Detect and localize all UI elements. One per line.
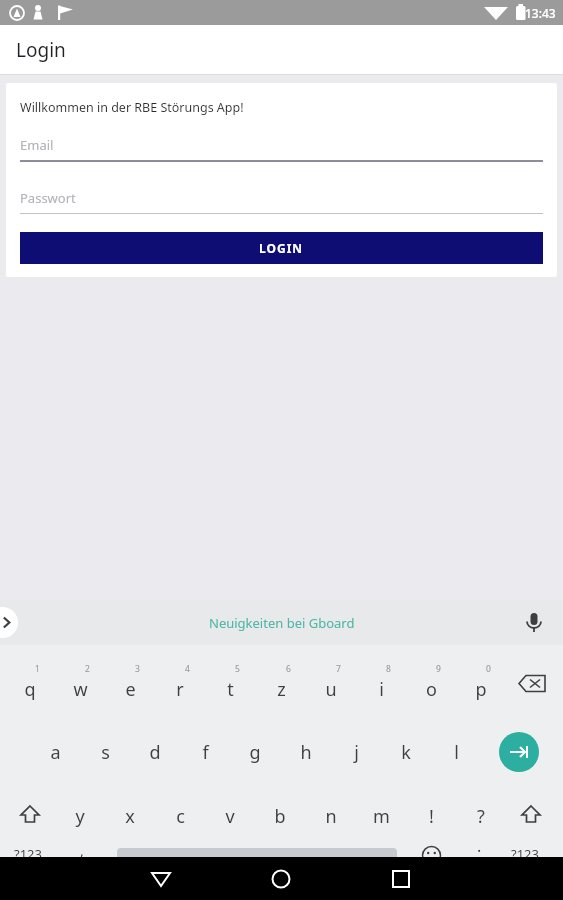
- button[interactable]: c: [159, 795, 201, 837]
- button[interactable]: a: [34, 731, 76, 773]
- staticText: b: [274, 804, 286, 829]
- staticText: 8: [386, 663, 391, 675]
- button[interactable]: Shift: [13, 800, 47, 834]
- button[interactable]: z: [260, 668, 302, 710]
- button[interactable]: Neuigkeiten bei Gboard: [209, 614, 355, 632]
- button[interactable]: b: [259, 795, 301, 837]
- staticText: Login: [16, 37, 66, 63]
- button[interactable]: p: [460, 668, 502, 710]
- button[interactable]: m: [360, 795, 402, 837]
- button[interactable]: ·: [477, 840, 482, 862]
- button[interactable]: Email: [20, 136, 543, 162]
- button[interactable]: ?123: [14, 845, 42, 863]
- staticText: i: [379, 677, 384, 702]
- button[interactable]: v: [209, 795, 251, 837]
- staticText: v: [225, 804, 235, 829]
- staticText: 6: [286, 663, 291, 675]
- button[interactable]: h: [285, 731, 327, 773]
- button[interactable]: x: [109, 795, 151, 837]
- staticText: a: [50, 740, 61, 765]
- staticText: LOGIN: [259, 240, 304, 256]
- staticText: t: [227, 677, 234, 702]
- button[interactable]: s: [84, 731, 126, 773]
- staticText: Willkommen in der RBE Störungs App!: [20, 99, 244, 116]
- staticText: 2: [85, 663, 90, 675]
- staticText: 0: [486, 663, 491, 675]
- staticText: u: [325, 677, 337, 702]
- staticText: Passwort: [20, 189, 76, 207]
- button[interactable]: k: [385, 731, 427, 773]
- staticText: e: [125, 677, 136, 702]
- button[interactable]: Back: [141, 859, 181, 899]
- staticText: x: [125, 804, 135, 829]
- button[interactable]: Recent apps: [381, 859, 421, 899]
- button[interactable]: Enter: [499, 732, 539, 772]
- staticText: k: [401, 740, 411, 765]
- staticText: f: [202, 740, 209, 765]
- button[interactable]: ?: [460, 795, 502, 837]
- button[interactable]: r: [159, 668, 201, 710]
- staticText: 13:43: [525, 5, 556, 21]
- staticText: z: [277, 677, 286, 702]
- button[interactable]: j: [335, 731, 377, 773]
- button[interactable]: ,: [80, 841, 84, 860]
- button[interactable]: LOGIN: [20, 232, 543, 264]
- button[interactable]: w: [59, 668, 101, 710]
- staticText: n: [325, 804, 337, 829]
- button[interactable]: g: [234, 731, 276, 773]
- staticText: w: [73, 677, 88, 702]
- staticText: y: [75, 804, 85, 829]
- staticText: m: [373, 804, 390, 829]
- button[interactable]: Home: [261, 859, 301, 899]
- button[interactable]: d: [134, 731, 176, 773]
- staticText: c: [176, 804, 185, 829]
- staticText: !: [429, 804, 434, 829]
- staticText: 9: [436, 663, 441, 675]
- button[interactable]: o: [410, 668, 452, 710]
- staticText: h: [300, 740, 312, 765]
- staticText: 5: [235, 663, 240, 675]
- button[interactable]: i: [360, 668, 402, 710]
- staticText: 4: [185, 663, 190, 675]
- button[interactable]: !: [410, 795, 452, 837]
- staticText: q: [24, 677, 36, 702]
- staticText: d: [149, 740, 161, 765]
- staticText: ?: [477, 804, 485, 829]
- button[interactable]: l: [435, 731, 477, 773]
- button[interactable]: Passwort: [20, 189, 543, 214]
- button[interactable]: n: [310, 795, 352, 837]
- button[interactable]: q: [9, 668, 51, 710]
- staticText: 7: [336, 663, 341, 675]
- button[interactable]: t: [209, 668, 251, 710]
- staticText: j: [354, 740, 359, 765]
- button[interactable]: e: [109, 668, 151, 710]
- button[interactable]: Shift: [514, 800, 548, 834]
- staticText: 3: [135, 663, 140, 675]
- staticText: r: [176, 677, 184, 702]
- staticText: 1: [35, 663, 40, 675]
- button[interactable]: y: [59, 795, 101, 837]
- button[interactable]: Expand suggestions: [0, 607, 18, 638]
- button[interactable]: Backspace: [516, 672, 550, 706]
- button[interactable]: Voice input: [521, 610, 547, 636]
- button[interactable]: ?123: [511, 845, 539, 863]
- button[interactable]: Space: [117, 848, 397, 863]
- button[interactable]: f: [184, 731, 226, 773]
- staticText: o: [426, 677, 437, 702]
- staticText: Email: [20, 136, 54, 154]
- button[interactable]: u: [310, 668, 352, 710]
- staticText: l: [454, 740, 459, 765]
- button[interactable]: Emoji: [419, 843, 444, 868]
- staticText: g: [249, 740, 261, 765]
- staticText: s: [101, 740, 110, 765]
- staticText: p: [475, 677, 487, 702]
